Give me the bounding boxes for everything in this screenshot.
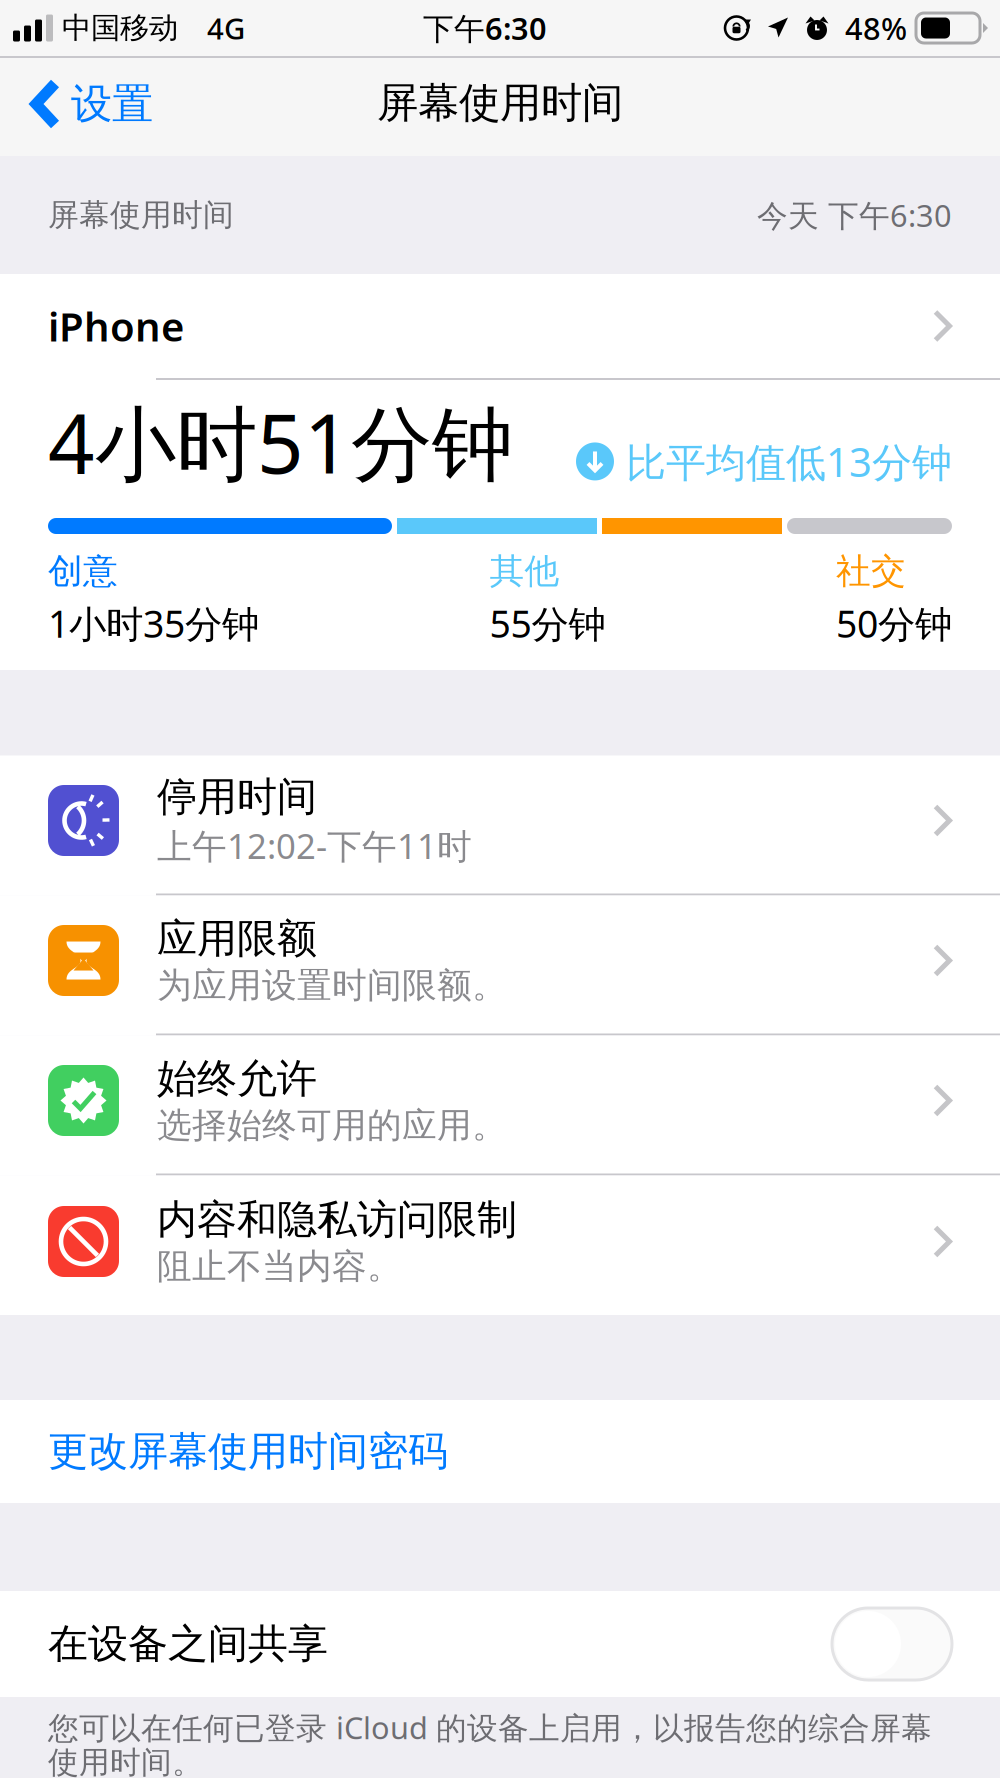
button[interactable]: 更改屏幕使用时间密码	[0, 1400, 1000, 1503]
staticText: 55分钟	[489, 599, 605, 648]
staticText: 为应用设置时间限额。	[157, 964, 507, 1007]
staticText: 4小时51分钟	[48, 388, 513, 496]
staticText: 选择始终可用的应用。	[157, 1104, 507, 1147]
staticText: 阻止不当内容。	[157, 1245, 402, 1288]
staticText: 创意	[48, 550, 118, 593]
staticText: 上午12:02-下午11时	[157, 822, 472, 868]
staticText: 50分钟	[836, 599, 952, 648]
staticText: 屏幕使用时间	[377, 78, 623, 128]
staticText: 1小时35分钟	[48, 599, 259, 648]
staticText: 停用时间	[157, 772, 317, 821]
staticText: 屏幕使用时间	[48, 196, 234, 234]
button[interactable]: 停用时间	[0, 755, 1000, 895]
staticText: 48%	[845, 8, 907, 48]
staticText: 设置	[71, 79, 153, 129]
button[interactable]: 内容和隐私访问限制	[0, 1175, 1000, 1315]
staticText: 中国移动	[62, 10, 178, 46]
button[interactable]: 在设备之间共享	[832, 1608, 952, 1680]
staticText: 其他	[489, 550, 559, 593]
staticText: 在设备之间共享	[48, 1619, 328, 1668]
staticText: 今天 下午6:30	[757, 195, 952, 235]
staticText: 应用限额	[157, 914, 317, 963]
staticText: 内容和隐私访问限制	[157, 1195, 517, 1244]
staticText: 下午6:30	[423, 8, 547, 48]
staticText: 4G	[207, 8, 245, 47]
staticText: 使用时间。	[48, 1744, 203, 1778]
button[interactable]: 始终允许	[0, 1035, 1000, 1175]
button[interactable]: iPhone	[0, 274, 1000, 380]
staticText: 比平均值低13分钟	[626, 435, 952, 488]
button[interactable]: 应用限额	[0, 895, 1000, 1035]
staticText: 社交	[836, 550, 906, 593]
staticText: 更改屏幕使用时间密码	[48, 1427, 448, 1476]
staticText: iPhone	[48, 299, 184, 352]
staticText: 始终允许	[157, 1054, 317, 1103]
button[interactable]: 设置	[0, 58, 171, 156]
staticText: 您可以在任何已登录 iCloud 的设备上启用，以报告您的综合屏幕	[48, 1707, 932, 1748]
